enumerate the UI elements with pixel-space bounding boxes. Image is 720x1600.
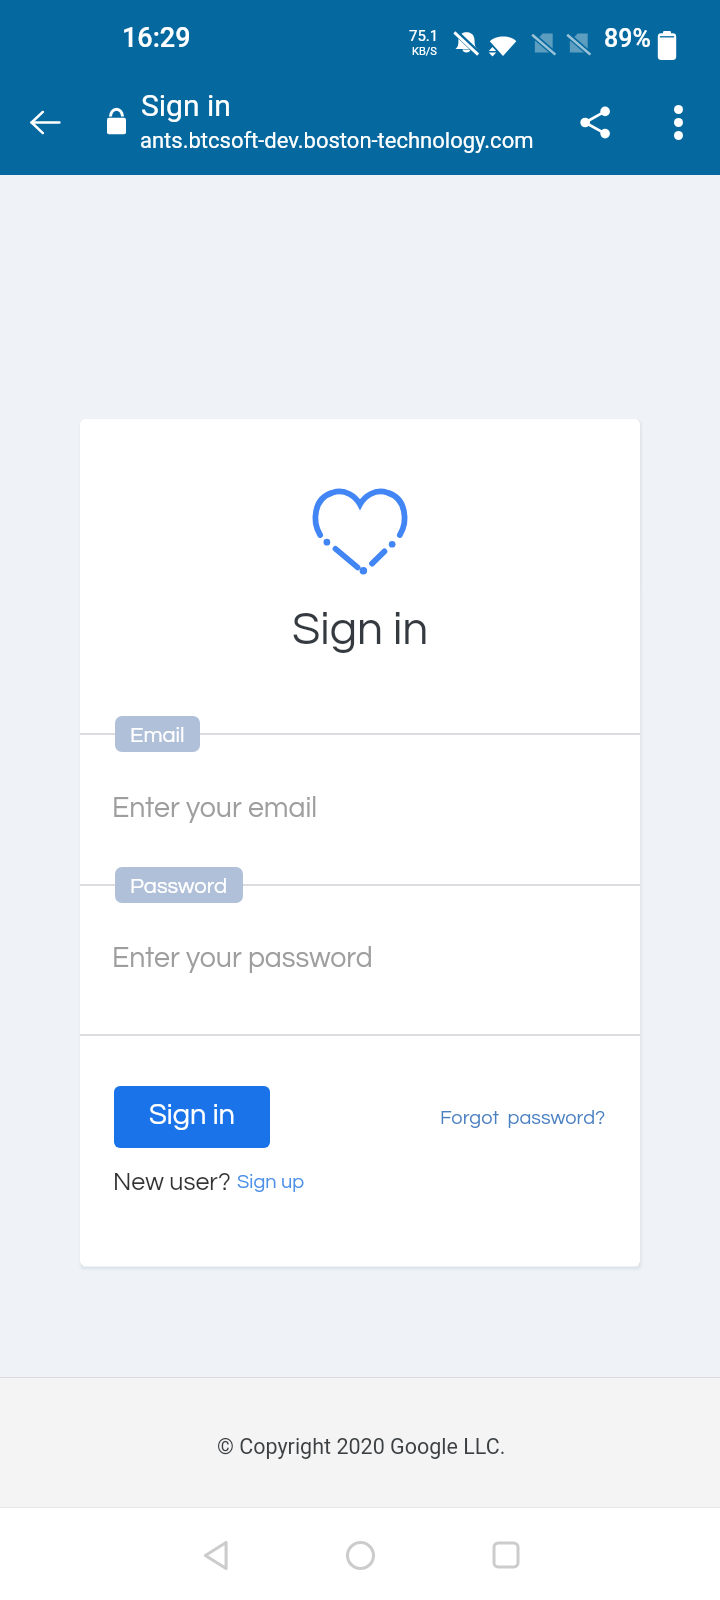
staticText: Enter your password — [112, 944, 373, 973]
staticText: Forgot password? — [440, 1108, 606, 1129]
button[interactable]: Share — [561, 88, 629, 156]
staticText: Sign in — [292, 606, 429, 653]
staticText: Password — [130, 875, 228, 898]
button[interactable]: Sign up — [237, 1172, 305, 1193]
button[interactable]: Back — [171, 1510, 261, 1600]
staticText: Sign in — [141, 88, 231, 123]
staticText: Enter your email — [112, 794, 318, 823]
button[interactable]: Sign in — [114, 1086, 270, 1148]
staticText: New user? — [113, 1169, 231, 1195]
staticText: 16:29 — [122, 22, 191, 54]
staticText: Email — [130, 724, 185, 747]
button[interactable]: More options — [644, 88, 712, 156]
staticText: Sign up — [237, 1172, 305, 1193]
staticText: ants.btcsoft-dev.boston-technology.com — [140, 128, 534, 154]
staticText: 89% — [604, 24, 651, 53]
button[interactable]: Home — [315, 1510, 405, 1600]
staticText: 75.1 — [409, 27, 439, 45]
staticText: KB/S — [412, 45, 437, 58]
staticText: © Copyright 2020 Google LLC. — [217, 1434, 506, 1459]
button[interactable]: Recents — [461, 1510, 551, 1600]
staticText: Sign in — [149, 1100, 235, 1130]
button[interactable]: Forgot password? — [440, 1108, 606, 1129]
button[interactable]: Back — [11, 88, 79, 156]
